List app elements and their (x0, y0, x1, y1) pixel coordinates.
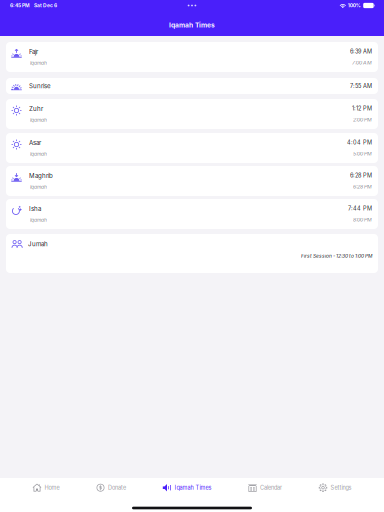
button[interactable]: Jumah (6, 234, 378, 273)
staticText: 100% (348, 2, 361, 8)
staticText: 2:00 PM (353, 116, 372, 123)
staticText: Iqamah Times (174, 484, 211, 491)
button[interactable]: Calendar (244, 477, 286, 499)
staticText: 6:28 PM (353, 183, 372, 190)
staticText: 1:12 PM (352, 105, 372, 112)
staticText: Fajr (29, 48, 38, 55)
staticText: Home (44, 484, 59, 491)
button[interactable]: Isha (6, 199, 378, 229)
staticText: 7:00 AM (352, 59, 372, 66)
button[interactable]: Home (28, 477, 63, 499)
staticText: Zuhr (29, 105, 43, 112)
staticText: Asar (29, 139, 41, 146)
button[interactable]: Fajr (6, 42, 378, 72)
staticText: 7:44 PM (348, 205, 372, 212)
staticText: Iqamah (30, 60, 47, 66)
staticText: 6:45 PM (10, 2, 30, 8)
button[interactable]: Zuhr (6, 99, 378, 129)
button[interactable]: Sunrise (6, 78, 378, 94)
staticText: Sunrise (29, 82, 51, 90)
staticText: Jumah (28, 240, 48, 248)
staticText: 6:28 PM (350, 172, 372, 179)
button[interactable]: Iqamah Times (158, 477, 215, 499)
staticText: 4:04 PM (347, 139, 372, 146)
staticText: Maghrib (29, 172, 53, 179)
staticText: 8:00 PM (353, 216, 372, 223)
staticText: Iqamah (30, 217, 47, 223)
staticText: Calendar (260, 484, 282, 491)
staticText: Iqamah (30, 184, 47, 190)
staticText: 7:55 AM (350, 83, 372, 89)
button[interactable]: Asar (6, 133, 378, 163)
staticText: First Session - 12:30 to 1:00 PM (301, 253, 372, 259)
staticText: 6:39 AM (350, 48, 372, 55)
staticText: Settings (330, 484, 351, 491)
staticText: Iqamah (30, 151, 47, 157)
staticText: Sat Dec 6 (34, 2, 57, 8)
staticText: Donate (108, 484, 126, 491)
button[interactable]: Donate (92, 477, 130, 499)
staticText: Iqamah Times (169, 21, 215, 29)
button[interactable]: Maghrib (6, 166, 378, 196)
button[interactable]: Settings (314, 477, 355, 499)
staticText: Isha (29, 205, 41, 212)
staticText: Iqamah (30, 117, 47, 123)
staticText: 5:00 PM (353, 150, 372, 157)
